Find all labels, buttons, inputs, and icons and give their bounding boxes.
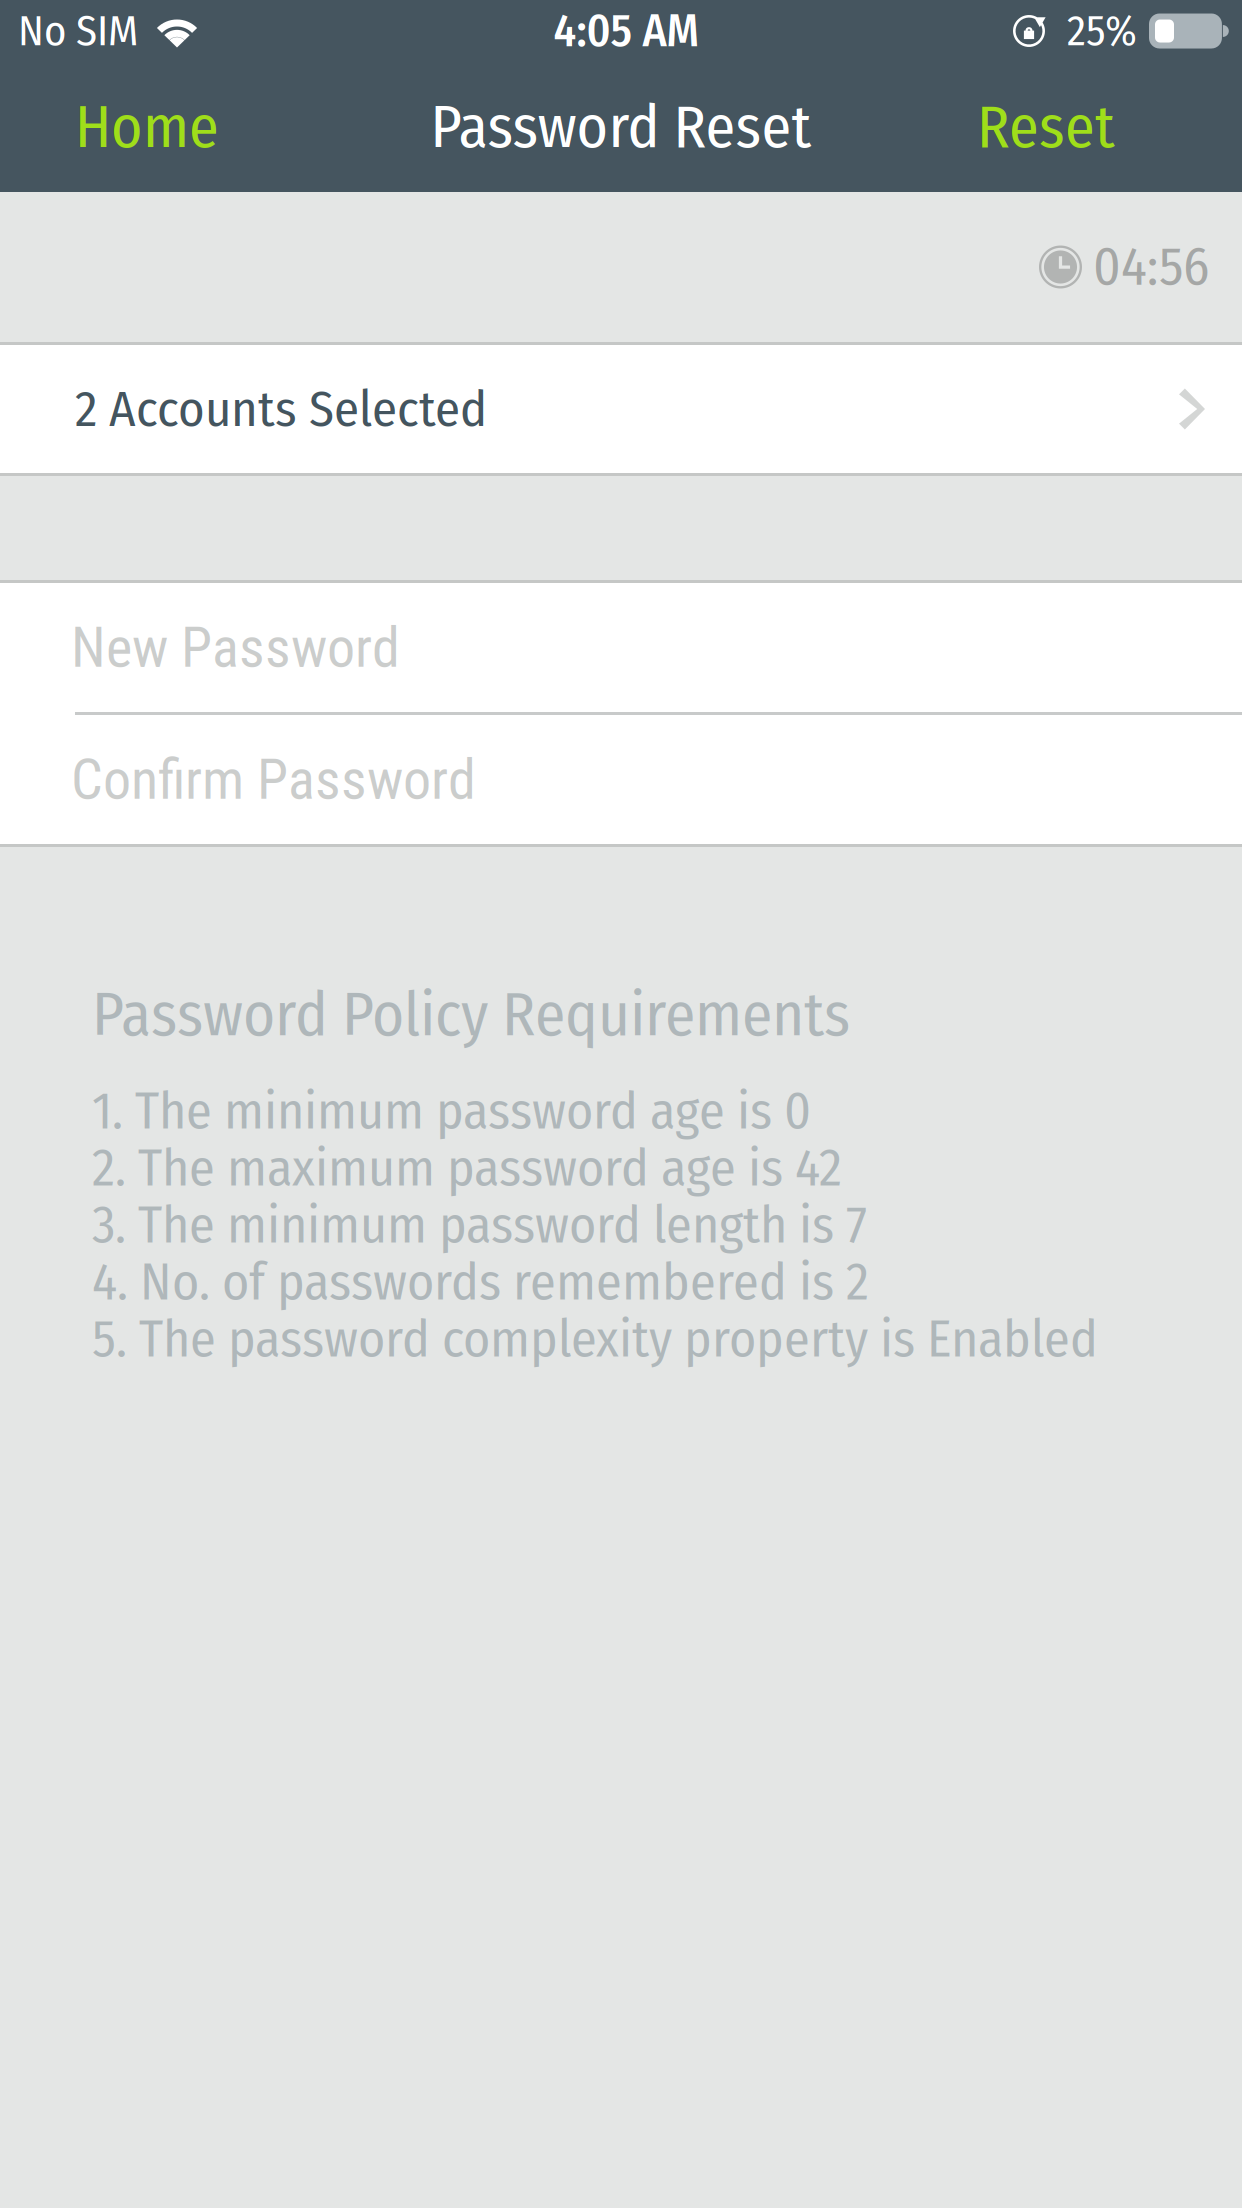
- button[interactable]: Confirm Password: [0, 715, 1242, 844]
- staticText: Confirm Password: [71, 747, 476, 812]
- staticText: Home: [75, 91, 219, 163]
- staticText: 5. The password complexity property is E…: [92, 1308, 1098, 1370]
- staticText: Password Policy Requirements: [92, 978, 850, 1052]
- staticText: 04:56: [1093, 235, 1209, 299]
- button[interactable]: Home: [0, 62, 249, 192]
- staticText: New Password: [71, 615, 400, 680]
- button[interactable]: New Password: [0, 583, 1242, 712]
- staticText: 4:05 AM: [553, 4, 699, 58]
- staticText: 3. The minimum password length is 7: [92, 1194, 867, 1256]
- button[interactable]: Reset: [947, 62, 1242, 192]
- button[interactable]: 2 Accounts Selected: [0, 345, 1242, 473]
- staticText: 2. The maximum password age is 42: [92, 1137, 842, 1199]
- staticText: 1. The minimum password age is 0: [92, 1080, 811, 1142]
- staticText: 4. No. of passwords remembered is 2: [92, 1251, 869, 1313]
- staticText: Password Reset: [430, 91, 811, 163]
- staticText: No SIM: [18, 5, 138, 57]
- staticText: Reset: [977, 91, 1115, 163]
- staticText: 2 Accounts Selected: [75, 379, 487, 439]
- staticText: 25%: [1067, 5, 1137, 57]
